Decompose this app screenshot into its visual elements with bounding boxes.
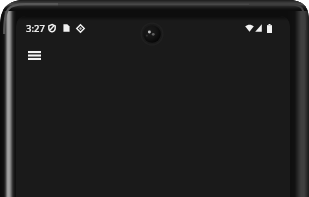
staticText: 3:27 [26,22,45,35]
button[interactable]: Open navigation menu [20,41,48,69]
other: Front camera [141,23,163,45]
